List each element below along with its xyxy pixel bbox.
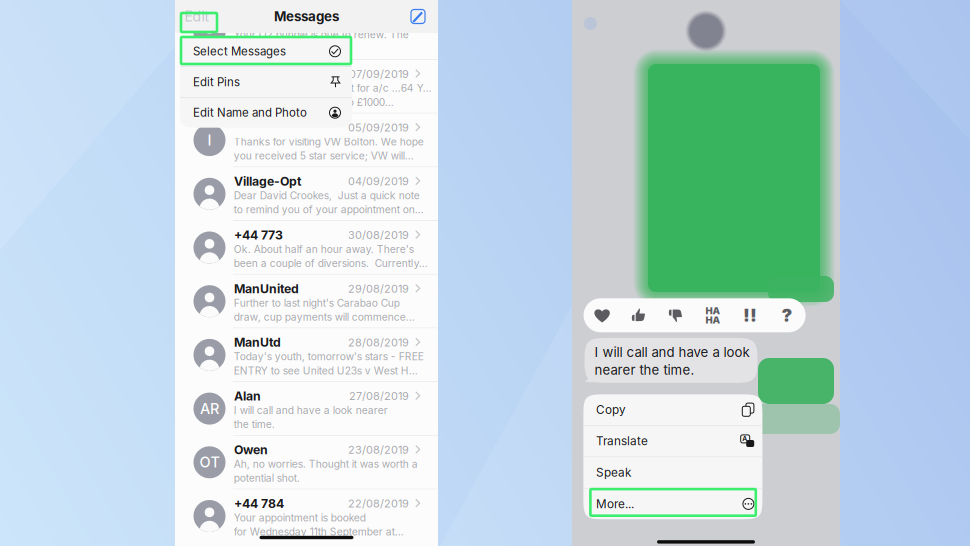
- staticText: 27/08/2019: [349, 390, 409, 402]
- button[interactable]: New message: [408, 6, 428, 26]
- staticText: balance has increased to £1000...: [234, 96, 394, 108]
- staticText: I will call and have a look: [594, 345, 749, 360]
- staticText: 07/09/2019: [349, 68, 409, 80]
- button[interactable]: Speak: [583, 457, 762, 488]
- button[interactable]: Haha: [695, 298, 732, 332]
- staticText: A: [742, 435, 747, 442]
- staticText: OT: [199, 454, 219, 470]
- staticText: draw, cup payments will commence...: [234, 311, 415, 323]
- staticText: 30/08/2019: [348, 229, 409, 241]
- button[interactable]: Edit Pins: [180, 67, 352, 97]
- staticText: Ah, no worries. Thought it was worth a: [234, 458, 418, 470]
- button[interactable]: Select Messages: [180, 36, 352, 66]
- button[interactable]: I: [175, 114, 438, 166]
- staticText: Your O2 bundle is due to renew. The: [234, 29, 409, 40]
- staticText: Your appointment is booked: [234, 512, 366, 523]
- staticText: ?: [782, 305, 793, 325]
- staticText: Copy: [596, 403, 626, 416]
- staticText: Village-Opt: [234, 174, 301, 188]
- button[interactable]: Thumbs down: [658, 298, 695, 332]
- staticText: HA: [706, 305, 721, 316]
- staticText: to remind you of your appointment on...: [234, 204, 424, 215]
- staticText: 29/08/2019: [348, 283, 409, 295]
- button[interactable]: AR: [175, 382, 438, 435]
- staticText: +44 773: [234, 228, 283, 242]
- staticText: 05/09/2019: [348, 121, 409, 134]
- staticText: Edit: [184, 9, 209, 24]
- staticText: offer will close on 30...: [234, 43, 340, 54]
- button[interactable]: Village-Opt: [175, 167, 438, 220]
- button[interactable]: Question: [769, 298, 806, 332]
- staticText: AR: [200, 400, 219, 417]
- staticText: Translate: [596, 435, 648, 448]
- staticText: Alan: [234, 389, 261, 403]
- staticText: Dear David Crookes, Just a quick note: [234, 190, 420, 201]
- staticText: I: [207, 132, 211, 148]
- staticText: for Wednesday 11th September at...: [234, 526, 404, 537]
- staticText: +44 784: [234, 497, 284, 510]
- staticText: potential shot.: [234, 472, 300, 484]
- button[interactable]: Barclays: [175, 60, 438, 113]
- staticText: been a couple of diversions. Currently..…: [234, 257, 428, 269]
- button[interactable]: Edit Name and Photo: [180, 98, 352, 128]
- staticText: I will call and have a look nearer: [234, 405, 388, 416]
- button[interactable]: More...: [583, 489, 762, 519]
- staticText: 23/08/2019: [348, 444, 409, 456]
- staticText: Select Messages: [193, 45, 286, 58]
- staticText: Today's youth, tomorrow's stars - FREE: [234, 351, 424, 362]
- staticText: Further to last night's Carabao Cup: [234, 297, 400, 309]
- button[interactable]: ManUnited: [175, 275, 438, 328]
- staticText: 28/08/2019: [348, 336, 409, 348]
- staticText: Speak: [596, 466, 631, 479]
- staticText: ManUnited: [234, 282, 299, 296]
- button[interactable]: +44 773: [175, 221, 438, 274]
- staticText: you received 5 star service; VW will...: [234, 150, 414, 161]
- staticText: ManUtd: [234, 336, 281, 349]
- button[interactable]: Copy: [583, 394, 762, 425]
- staticText: Edit Name and Photo: [193, 106, 307, 119]
- staticText: Edit Pins: [193, 76, 240, 88]
- button[interactable]: Thumbs up: [621, 298, 658, 332]
- button[interactable]: ManUtd: [175, 328, 438, 381]
- staticText: Owen: [234, 443, 268, 457]
- button[interactable]: Translate: [583, 426, 762, 456]
- button[interactable]: O2: [175, 6, 438, 59]
- button[interactable]: Exclamation: [732, 298, 769, 332]
- button[interactable]: Edit: [182, 7, 212, 25]
- button[interactable]: OT: [175, 436, 438, 489]
- staticText: Ok. About half an hour away. There's: [234, 243, 414, 255]
- staticText: nearer the time.: [594, 363, 694, 377]
- staticText: HA: [706, 315, 721, 325]
- staticText: Barclays: Your statement for a/c ...64 Y…: [234, 82, 432, 94]
- staticText: the time.: [234, 419, 275, 430]
- staticText: More...: [596, 497, 634, 510]
- staticText: 04/09/2019: [348, 175, 409, 187]
- staticText: 22/08/2019: [348, 497, 409, 510]
- staticText: Messages: [274, 9, 339, 24]
- button[interactable]: +44 784: [175, 489, 438, 542]
- staticText: !!: [743, 305, 757, 325]
- button[interactable]: Love: [584, 298, 621, 332]
- staticText: Barclays: [234, 67, 285, 81]
- staticText: ENTRY to see United U23s v West H...: [234, 365, 418, 376]
- staticText: Thanks for visiting VW Bolton. We hope: [234, 136, 424, 147]
